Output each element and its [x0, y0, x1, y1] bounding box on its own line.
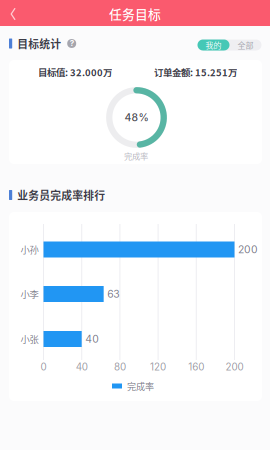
button[interactable]: Back: [0, 0, 26, 26]
staticText: 完成率: [124, 150, 148, 162]
staticText: 小李: [20, 287, 38, 301]
button[interactable]: 全部: [229, 39, 261, 50]
staticText: 订单金额: 15.251万: [154, 65, 237, 79]
staticText: 任务目标: [109, 4, 161, 23]
staticText: 200: [225, 361, 243, 373]
staticText: 80: [114, 361, 126, 373]
button[interactable]: Help: [61, 39, 76, 48]
staticText: 63: [107, 288, 119, 300]
staticText: 业务员完成率排行: [17, 187, 105, 203]
staticText: 160: [188, 361, 204, 373]
staticText: 200: [238, 243, 258, 256]
staticText: 我的: [205, 39, 221, 51]
staticText: 40: [76, 361, 88, 373]
staticText: 完成率: [127, 379, 154, 392]
staticText: 小孙: [20, 243, 38, 256]
staticText: 48%: [124, 111, 148, 124]
staticText: 全部: [237, 39, 253, 51]
staticText: 40: [85, 333, 99, 345]
staticText: 0: [40, 361, 46, 373]
staticText: 小张: [20, 332, 38, 346]
staticText: ?: [70, 38, 74, 48]
staticText: 目标值: 32.000万: [38, 65, 112, 79]
button[interactable]: 我的: [197, 39, 229, 50]
staticText: 120: [150, 361, 166, 373]
staticText: 目标统计: [17, 36, 61, 51]
